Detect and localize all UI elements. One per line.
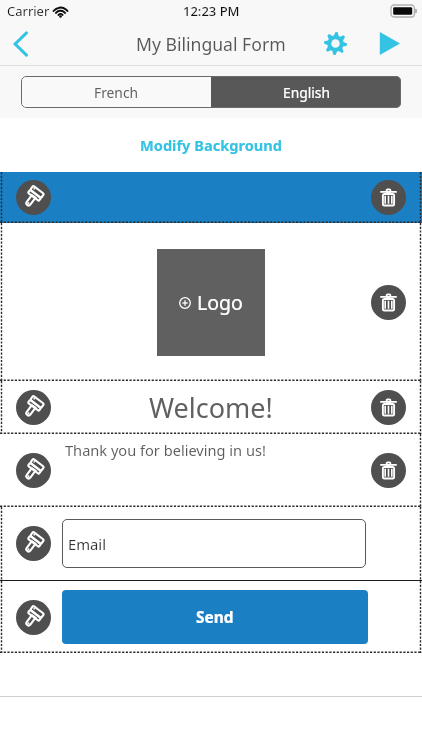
staticText: Send	[196, 607, 234, 628]
button[interactable]: Email	[62, 519, 366, 568]
button[interactable]: English	[211, 76, 401, 108]
staticText: English	[283, 83, 330, 102]
button[interactable]: Logo	[157, 249, 265, 356]
staticText: 12:23 PM	[183, 2, 240, 20]
button[interactable]: Edit style	[16, 390, 51, 425]
button[interactable]: Delete	[371, 390, 406, 425]
button[interactable]: Modify Background	[132, 129, 291, 161]
button[interactable]: Edit style	[16, 526, 51, 561]
staticText: Modify Background	[140, 135, 283, 155]
staticText: Welcome!	[149, 389, 273, 426]
button[interactable]: Settings	[313, 22, 357, 65]
staticText: French	[94, 83, 139, 102]
button[interactable]: Edit style	[16, 453, 51, 488]
button[interactable]: French	[21, 76, 211, 108]
button[interactable]: Delete	[371, 453, 406, 488]
staticText: Thank you for believing in us!	[65, 440, 266, 460]
staticText: Carrier	[7, 2, 50, 20]
staticText: Email	[68, 534, 106, 554]
button[interactable]: Delete	[371, 180, 406, 215]
button[interactable]: Edit style	[16, 180, 51, 215]
button[interactable]: Edit style	[16, 600, 51, 635]
button[interactable]: Preview	[368, 22, 411, 65]
button[interactable]: Delete	[371, 285, 406, 320]
staticText: My Bilingual Form	[136, 32, 286, 56]
button[interactable]: Back	[0, 22, 41, 65]
button[interactable]: Send	[62, 590, 368, 644]
staticText: Logo	[197, 289, 243, 316]
